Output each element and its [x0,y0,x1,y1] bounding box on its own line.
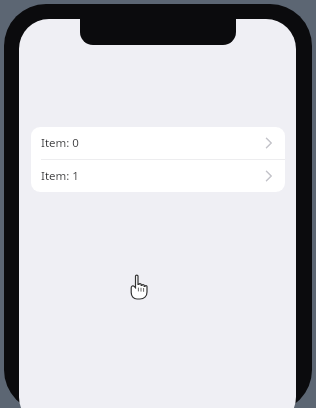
button[interactable]: Item: 1 [31,160,285,192]
other: Open Item: 0 [261,127,277,159]
other: Open Item: 1 [261,160,277,192]
button[interactable]: Item: 0 [31,127,285,159]
staticText: Item: 0 [41,135,79,151]
staticText: Item: 1 [41,168,79,184]
